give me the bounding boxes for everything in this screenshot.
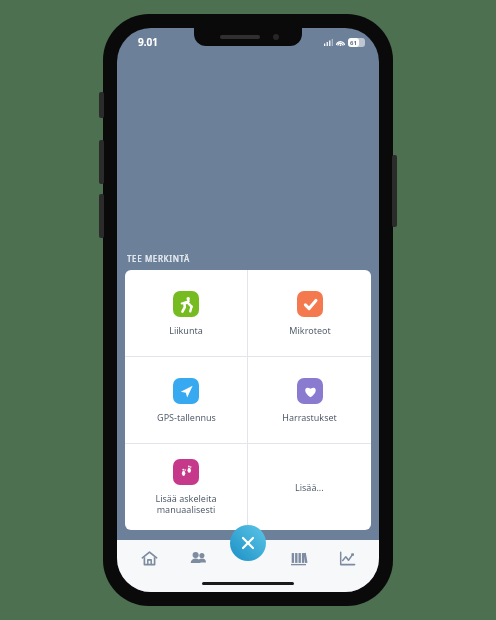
button[interactable]: Lisää... [248, 444, 371, 530]
button[interactable]: Sulje [230, 525, 266, 561]
button[interactable]: Liikunta [125, 270, 247, 356]
staticText: Mikroteot [289, 324, 331, 336]
button[interactable]: Päiväkirja [280, 540, 316, 576]
staticText: GPS-tallennus [157, 411, 216, 423]
staticText: Liikunta [169, 324, 203, 336]
button[interactable]: Koti [131, 540, 167, 576]
staticText: Harrastukset [282, 411, 337, 423]
staticText: 61 [350, 39, 357, 47]
button[interactable]: GPS-tallennus [125, 357, 247, 443]
button[interactable]: Mikroteot [248, 270, 371, 356]
button[interactable]: Lisää askeleita manuaalisesti [125, 444, 247, 530]
staticText: 9.01 [138, 35, 158, 49]
staticText: TEE MERKINTÄ [127, 253, 190, 264]
button[interactable]: Tilastot [329, 540, 365, 576]
staticText: Lisää askeleita manuaalisesti [155, 492, 217, 515]
staticText: Lisää... [295, 481, 324, 493]
button[interactable]: Harrastukset [248, 357, 371, 443]
button[interactable]: Kaverit [180, 540, 216, 576]
